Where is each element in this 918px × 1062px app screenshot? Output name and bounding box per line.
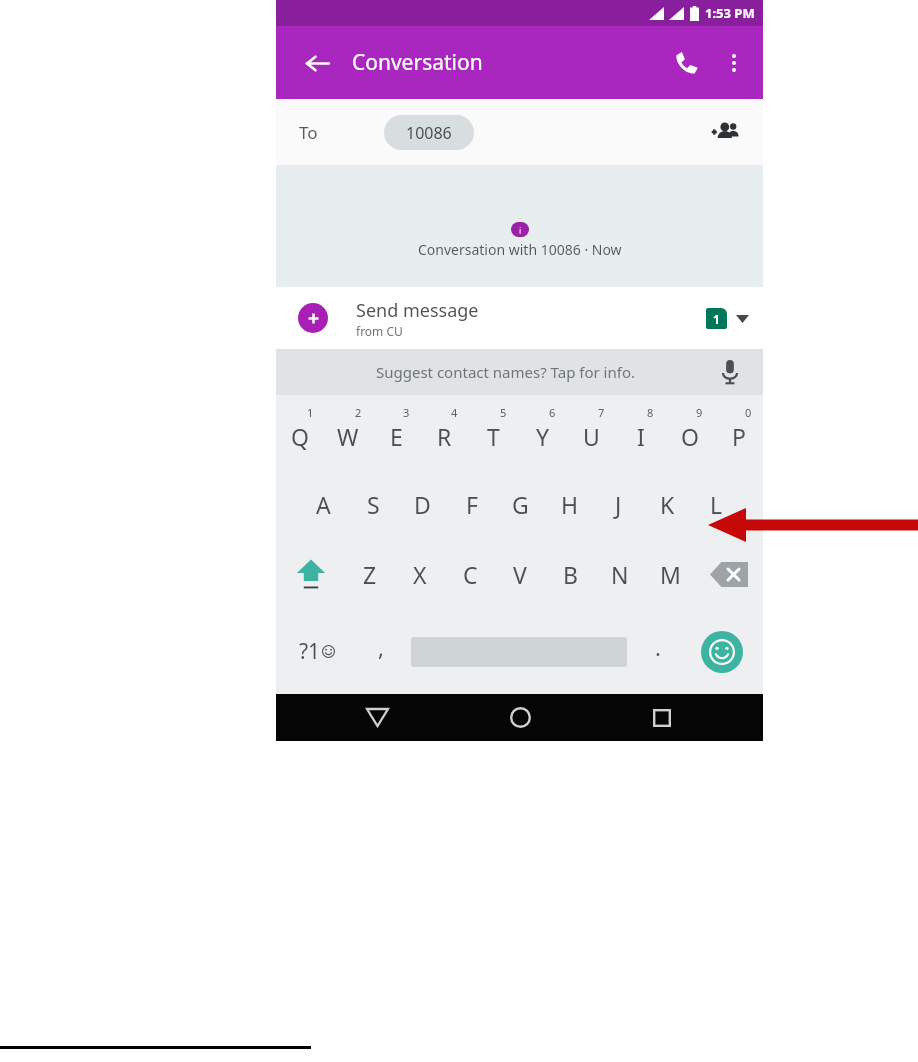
staticText: C — [463, 559, 478, 590]
staticText: 5 — [500, 405, 507, 420]
staticText: Send message — [356, 298, 479, 323]
staticText: B — [563, 559, 578, 590]
staticText: T — [487, 421, 500, 452]
button[interactable]: 8 — [616, 395, 665, 469]
button[interactable]: Space — [404, 609, 634, 694]
button[interactable]: H — [545, 469, 594, 539]
button[interactable]: G — [496, 469, 545, 539]
staticText: W — [337, 421, 359, 452]
staticText: X — [413, 559, 427, 590]
staticText: O — [681, 421, 699, 452]
staticText: N — [611, 559, 629, 590]
staticText: , — [378, 632, 384, 662]
staticText: 8 — [647, 405, 654, 420]
button[interactable]: Add people — [705, 111, 747, 153]
button[interactable]: K — [643, 469, 692, 539]
button[interactable]: 0 — [714, 395, 763, 469]
button[interactable]: More options — [715, 44, 753, 82]
staticText: L — [710, 489, 723, 520]
button[interactable]: S — [348, 469, 398, 539]
button[interactable]: Z — [345, 539, 395, 609]
button[interactable]: V — [495, 539, 545, 609]
staticText: U — [583, 421, 600, 452]
staticText: Z — [363, 559, 377, 590]
staticText: R — [437, 421, 452, 452]
staticText: 1 — [307, 405, 314, 420]
staticText: I — [637, 421, 645, 452]
staticText: 3 — [403, 405, 410, 420]
staticText: Q — [291, 421, 309, 452]
button[interactable]: 4 — [420, 395, 469, 469]
button[interactable]: F — [447, 469, 496, 539]
button[interactable]: D — [398, 469, 447, 539]
button[interactable]: , — [357, 609, 404, 694]
staticText: . — [655, 632, 661, 662]
staticText: 10086 — [406, 122, 452, 144]
staticText: H — [561, 489, 579, 520]
button[interactable]: L — [692, 469, 741, 539]
button[interactable]: X — [395, 539, 445, 609]
staticText: V — [513, 559, 527, 590]
button[interactable]: Attach — [298, 303, 328, 333]
button[interactable]: B — [545, 539, 595, 609]
staticText: G — [512, 489, 529, 520]
button[interactable]: M — [645, 539, 695, 609]
button[interactable]: 9 — [665, 395, 714, 469]
staticText: S — [367, 489, 380, 520]
staticText: 1 — [713, 311, 720, 327]
button[interactable]: Suggest contact names? Tap for info. — [376, 362, 635, 382]
staticText: from CU — [356, 323, 403, 339]
button[interactable]: Home — [449, 694, 591, 741]
staticText: To — [299, 121, 318, 144]
staticText: J — [615, 489, 622, 520]
button[interactable]: N — [595, 539, 645, 609]
button[interactable]: Emoji — [681, 609, 763, 694]
staticText: Conversation with 10086 · Now — [418, 240, 622, 259]
staticText: 9 — [696, 405, 703, 420]
button[interactable]: Voice input — [713, 355, 747, 389]
staticText: P — [732, 421, 746, 452]
button[interactable]: 1 — [276, 395, 324, 469]
button[interactable]: C — [445, 539, 495, 609]
button[interactable]: Recents — [591, 694, 733, 741]
button[interactable]: 2 — [324, 395, 372, 469]
button[interactable]: 3 — [372, 395, 420, 469]
staticText: 0 — [745, 405, 752, 420]
staticText: K — [660, 489, 675, 520]
button[interactable]: 5 — [469, 395, 518, 469]
staticText: Conversation — [352, 48, 483, 77]
staticText: M — [660, 559, 681, 590]
staticText: 2 — [355, 405, 362, 420]
button[interactable]: 6 — [518, 395, 567, 469]
staticText: 4 — [451, 405, 458, 420]
button[interactable]: Call — [667, 43, 707, 83]
button[interactable]: Select SIM — [706, 308, 749, 329]
button[interactable]: Back — [300, 46, 334, 80]
staticText: F — [466, 489, 478, 520]
button[interactable]: Symbols — [276, 609, 357, 694]
staticText: D — [414, 489, 431, 520]
button[interactable]: Shift — [276, 539, 345, 609]
staticText: Y — [536, 421, 550, 452]
button[interactable]: Backspace — [695, 539, 763, 609]
button[interactable]: A — [298, 469, 348, 539]
button[interactable]: 10086 — [384, 115, 474, 150]
staticText: 6 — [549, 405, 556, 420]
staticText: ?1 — [299, 637, 321, 666]
staticText: A — [316, 489, 331, 520]
staticText: E — [390, 421, 403, 452]
button[interactable]: Back — [306, 694, 449, 741]
staticText: 7 — [598, 405, 605, 420]
staticText: 1:53 PM — [705, 4, 755, 22]
button[interactable]: 7 — [567, 395, 616, 469]
staticText: i — [519, 224, 522, 236]
button[interactable]: J — [594, 469, 643, 539]
button[interactable]: . — [634, 609, 681, 694]
